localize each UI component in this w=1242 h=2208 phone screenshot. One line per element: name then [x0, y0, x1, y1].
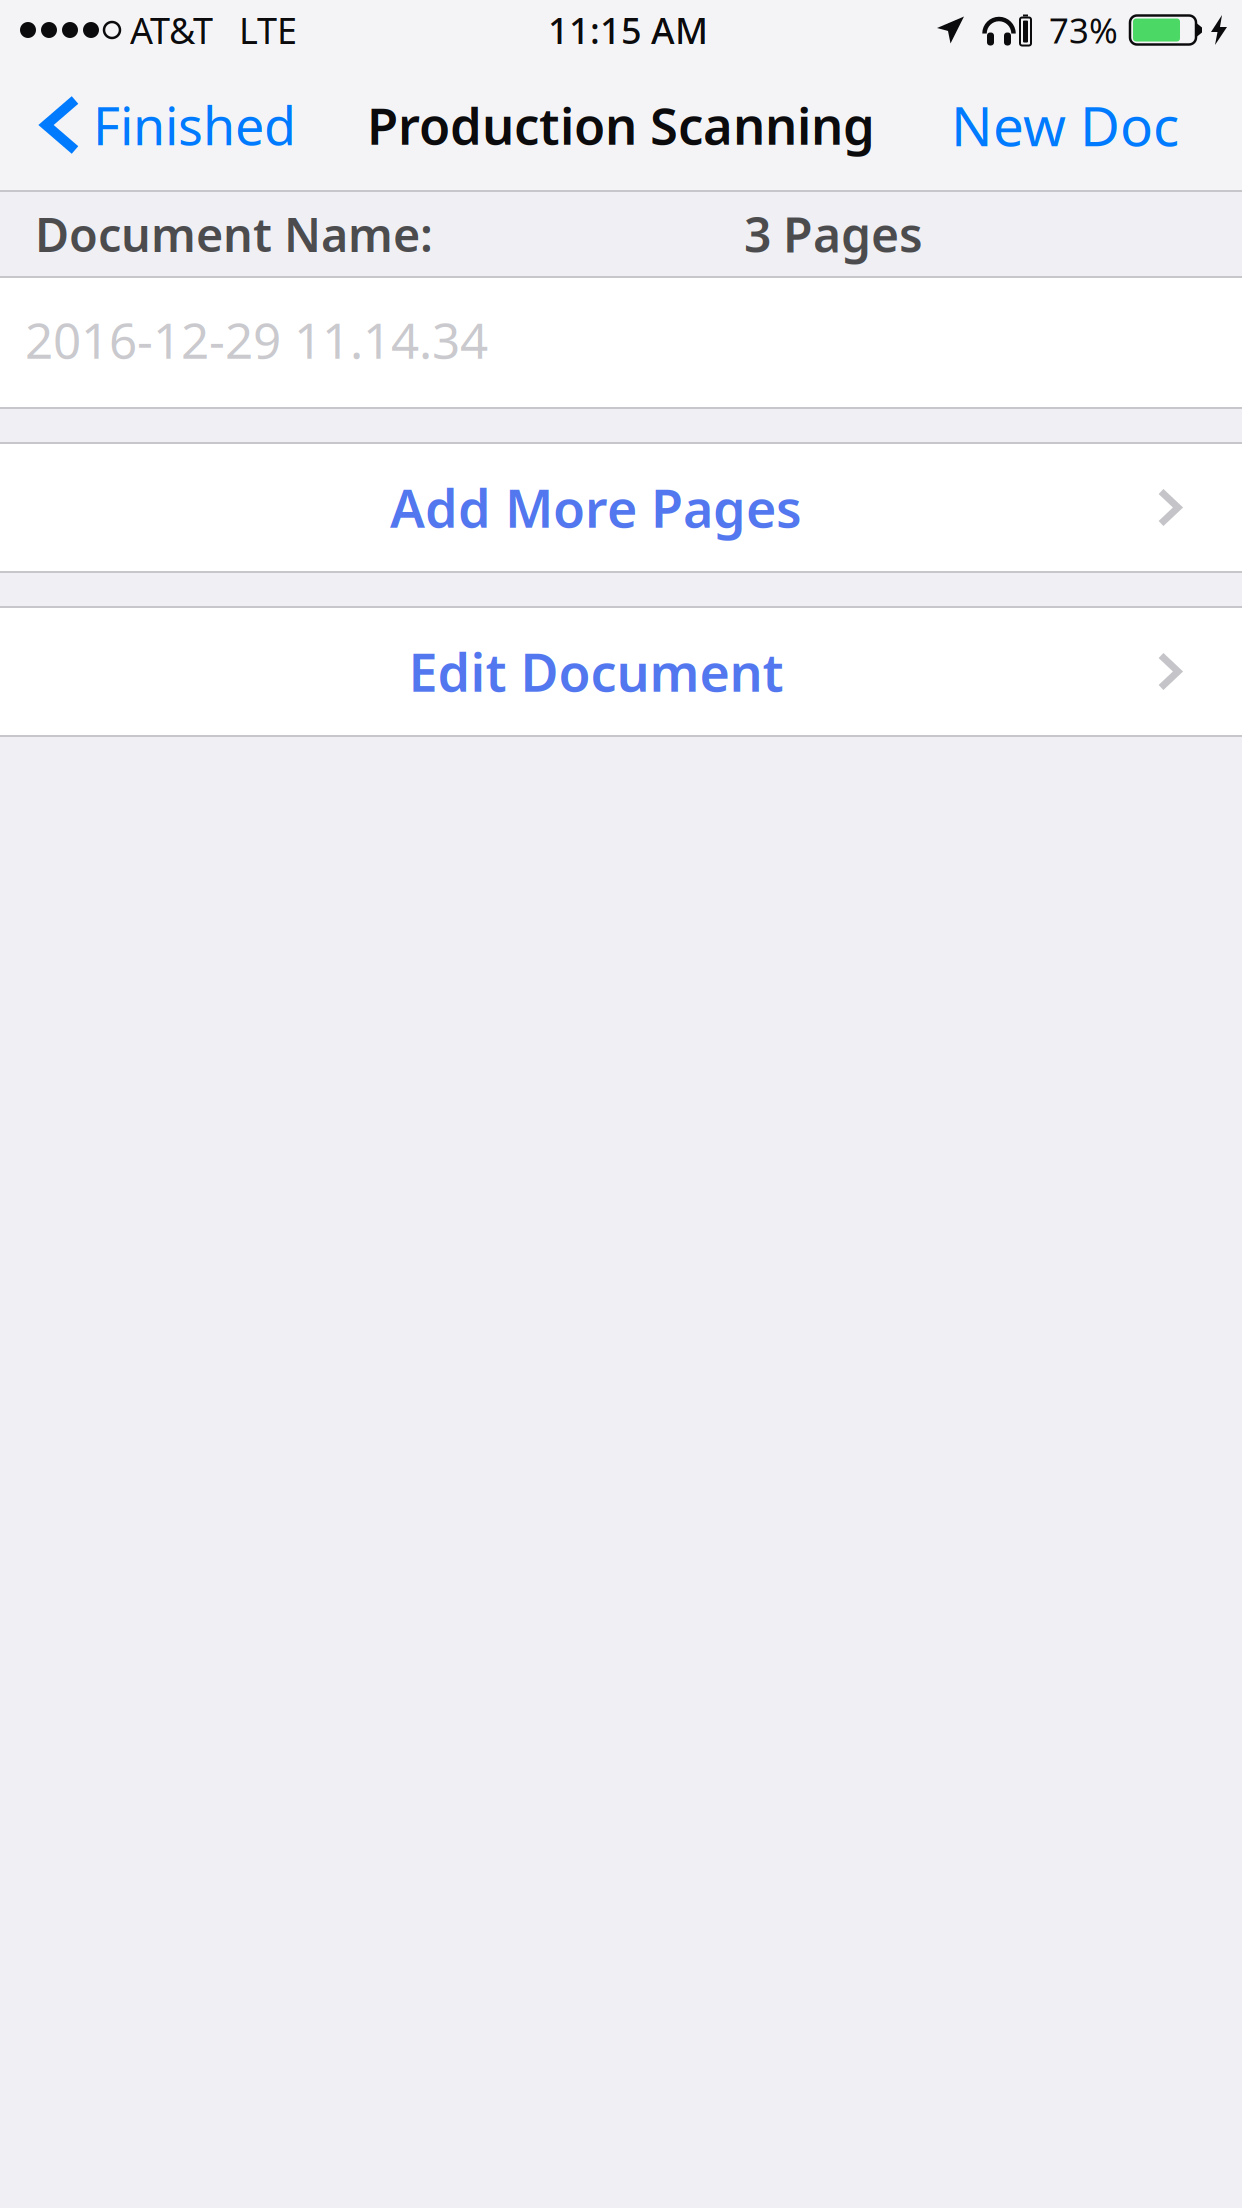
staticText: 73% — [1049, 7, 1118, 53]
staticText: LTE — [239, 6, 297, 54]
staticText: 2016-12-29 11.14.34 — [25, 307, 488, 372]
staticText: Add More Pages — [390, 473, 802, 542]
button[interactable]: Add More Pages — [0, 444, 1242, 571]
staticText: Production Scanning — [367, 91, 875, 159]
staticText: 3 Pages — [744, 202, 923, 266]
staticText: Edit Document — [408, 637, 783, 706]
staticText: AT&T — [130, 6, 213, 54]
button[interactable]: Finished — [0, 60, 320, 190]
staticText: Document Name: — [35, 203, 433, 265]
button[interactable]: New Doc — [927, 60, 1242, 190]
staticText: Finished — [93, 90, 296, 160]
staticText: New Doc — [951, 89, 1179, 161]
button[interactable]: Document name — [0, 278, 1242, 407]
button[interactable]: Edit Document — [0, 608, 1242, 735]
staticText: 11:15 AM — [548, 6, 708, 54]
